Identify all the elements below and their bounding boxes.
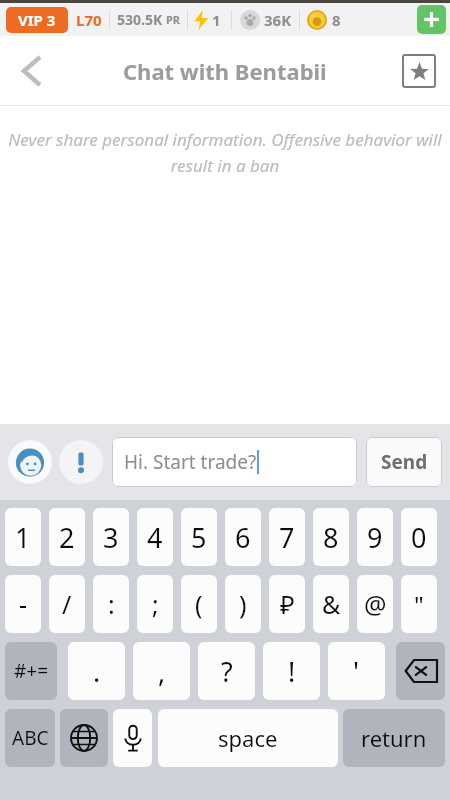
- staticText: 0: [411, 519, 427, 556]
- button[interactable]: ?: [198, 642, 255, 700]
- staticText: 5: [191, 519, 207, 556]
- button[interactable]: #+=: [5, 642, 57, 700]
- button[interactable]: Send: [366, 437, 442, 487]
- staticText: 4: [147, 519, 163, 556]
- staticText: 7: [279, 519, 295, 556]
- staticText: ₽: [280, 587, 295, 621]
- button[interactable]: Backspace: [396, 642, 445, 700]
- button[interactable]: 4: [137, 508, 173, 566]
- staticText: 6: [235, 519, 251, 556]
- button[interactable]: ': [328, 642, 385, 700]
- button[interactable]: Change keyboard: [60, 709, 108, 767]
- staticText: 530.5K: [117, 10, 163, 29]
- staticText: space: [218, 723, 278, 753]
- staticText: 2: [59, 519, 75, 556]
- staticText: #+=: [14, 658, 49, 684]
- button[interactable]: Back: [6, 45, 58, 97]
- staticText: ': [353, 653, 360, 690]
- button[interactable]: ₽: [269, 575, 305, 633]
- button[interactable]: ,: [133, 642, 190, 700]
- button[interactable]: 1: [5, 508, 41, 566]
- staticText: ;: [152, 587, 159, 621]
- staticText: 1: [15, 519, 31, 556]
- button[interactable]: 3: [93, 508, 129, 566]
- button[interactable]: space: [158, 709, 338, 767]
- button[interactable]: ;: [137, 575, 173, 633]
- button[interactable]: 6: [225, 508, 261, 566]
- button[interactable]: Hi. Start trade?: [112, 437, 357, 487]
- staticText: 3: [103, 519, 119, 556]
- button[interactable]: return: [343, 709, 445, 767]
- button[interactable]: !: [263, 642, 320, 700]
- button[interactable]: (: [181, 575, 217, 633]
- button[interactable]: 2: [49, 508, 85, 566]
- button[interactable]: Add: [417, 5, 446, 34]
- button[interactable]: -: [5, 575, 41, 633]
- button[interactable]: :: [93, 575, 129, 633]
- button[interactable]: .: [68, 642, 125, 700]
- staticText: Chat with Bentabii: [123, 56, 327, 86]
- staticText: ABC: [12, 725, 49, 751]
- button[interactable]: ): [225, 575, 261, 633]
- staticText: 8: [332, 10, 341, 30]
- staticText: return: [361, 723, 427, 753]
- staticText: Hi. Start trade?: [124, 449, 257, 475]
- button[interactable]: 5: [181, 508, 217, 566]
- button[interactable]: &: [313, 575, 349, 633]
- button[interactable]: VIP 3: [6, 7, 68, 33]
- staticText: L70: [76, 10, 102, 30]
- staticText: !: [288, 653, 296, 690]
- button[interactable]: @: [357, 575, 393, 633]
- staticText: 8: [323, 519, 339, 556]
- staticText: Send: [381, 449, 428, 475]
- staticText: (: [195, 587, 203, 621]
- staticText: :: [108, 587, 115, 621]
- button[interactable]: Warning: [59, 440, 103, 484]
- button[interactable]: 0: [401, 508, 437, 566]
- staticText: ": [414, 588, 424, 621]
- staticText: /: [62, 587, 72, 621]
- staticText: 36K: [264, 10, 292, 30]
- button[interactable]: 7: [269, 508, 305, 566]
- staticText: PR: [166, 12, 181, 27]
- staticText: ,: [158, 653, 166, 690]
- button[interactable]: /: [49, 575, 85, 633]
- staticText: VIP 3: [18, 10, 56, 30]
- button[interactable]: 8: [313, 508, 349, 566]
- staticText: 1: [212, 10, 221, 30]
- button[interactable]: Voice input: [113, 709, 152, 767]
- staticText: 9: [367, 519, 383, 556]
- staticText: &: [322, 587, 341, 621]
- button[interactable]: ": [401, 575, 437, 633]
- staticText: ): [239, 587, 247, 621]
- button[interactable]: Favorite: [402, 54, 436, 88]
- staticText: @: [364, 587, 387, 621]
- staticText: -: [19, 587, 28, 621]
- staticText: Never share personal information. Offens…: [4, 128, 446, 177]
- staticText: ?: [221, 653, 233, 690]
- button[interactable]: ABC: [5, 709, 55, 767]
- staticText: .: [93, 653, 101, 690]
- button[interactable]: 9: [357, 508, 393, 566]
- button[interactable]: Avatar: [8, 440, 52, 484]
